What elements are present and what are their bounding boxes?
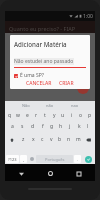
button[interactable]: Comma: [20, 155, 27, 163]
button[interactable]: Period: [74, 155, 81, 163]
button[interactable]: Backspace: [83, 134, 94, 145]
button[interactable]: x: [29, 134, 37, 145]
button[interactable]: Recents: [74, 169, 83, 178]
button[interactable]: p: [86, 110, 94, 121]
button[interactable]: r: [32, 110, 40, 121]
staticText: n: [67, 136, 71, 143]
staticText: não: [46, 103, 54, 108]
button[interactable]: t: [41, 110, 49, 121]
button[interactable]: a: [8, 121, 17, 132]
button[interactable]: Enter: [82, 155, 94, 163]
button[interactable]: q: [6, 110, 13, 121]
button[interactable]: Home: [46, 169, 55, 178]
button[interactable]: Shift: [6, 134, 18, 145]
staticText: ?123: [8, 157, 17, 162]
staticText: Português: [45, 157, 65, 162]
button[interactable]: n: [65, 134, 73, 145]
staticText: É uma SP?: [20, 72, 44, 79]
staticText: y: [53, 112, 56, 119]
button[interactable]: z: [19, 134, 28, 145]
staticText: .: [77, 157, 79, 162]
staticText: e: [26, 112, 29, 119]
staticText: m: [76, 136, 81, 143]
button[interactable]: i: [68, 110, 76, 121]
button[interactable]: g: [48, 121, 56, 132]
button[interactable]: s: [18, 121, 27, 132]
button[interactable]: j: [66, 121, 74, 132]
staticText: d: [31, 123, 35, 130]
staticText: f: [42, 123, 44, 130]
button[interactable]: CANCELAR: [25, 79, 53, 87]
button[interactable]: f: [38, 121, 47, 132]
button[interactable]: Emoji: [28, 155, 35, 163]
staticText: o: [79, 112, 83, 119]
staticText: Quanto eu preciso? - FIAP: [9, 25, 76, 32]
staticText: Adicionar Matéria: [14, 40, 67, 48]
button[interactable]: Back: [17, 169, 26, 178]
button[interactable]: m: [74, 134, 82, 145]
staticText: Não estudei ano passado: [14, 58, 74, 65]
staticText: z: [22, 136, 25, 143]
button[interactable]: k: [75, 121, 83, 132]
staticText: 1:00: [83, 13, 93, 20]
staticText: w: [16, 112, 20, 119]
button[interactable]: É uma SP?: [14, 72, 44, 79]
button[interactable]: d: [28, 121, 37, 132]
staticText: k: [78, 123, 81, 130]
button[interactable]: v: [47, 134, 55, 145]
staticText: CANCELAR: [26, 80, 52, 86]
button[interactable]: ?123: [6, 155, 19, 163]
button[interactable]: b: [56, 134, 64, 145]
button[interactable]: Add: [77, 82, 89, 94]
staticText: nao: [71, 103, 79, 108]
staticText: a: [11, 123, 14, 130]
button[interactable]: u: [59, 110, 67, 121]
staticText: l: [87, 123, 89, 130]
button[interactable]: CRIAR: [58, 79, 75, 87]
staticText: q: [8, 112, 12, 119]
staticText: x: [32, 136, 35, 143]
button[interactable]: o: [77, 110, 85, 121]
staticText: c: [41, 136, 44, 143]
staticText: r: [35, 112, 38, 119]
staticText: p: [88, 112, 92, 119]
staticText: u: [61, 112, 65, 119]
staticText: j: [69, 123, 71, 130]
staticText: v: [50, 136, 53, 143]
staticText: g: [50, 123, 54, 130]
button[interactable]: h: [57, 121, 65, 132]
button[interactable]: y: [50, 110, 58, 121]
button[interactable]: w: [14, 110, 22, 121]
button[interactable]: c: [38, 134, 46, 145]
staticText: i: [71, 112, 73, 119]
staticText: CRIAR: [59, 80, 74, 86]
staticText: ,: [23, 157, 25, 162]
staticText: s: [21, 123, 24, 130]
staticText: Não: [22, 103, 30, 108]
staticText: b: [58, 136, 62, 143]
button[interactable]: l: [84, 121, 92, 132]
button[interactable]: Português: [36, 155, 73, 163]
staticText: h: [59, 123, 63, 130]
button[interactable]: e: [23, 110, 31, 121]
staticText: t: [44, 112, 46, 119]
